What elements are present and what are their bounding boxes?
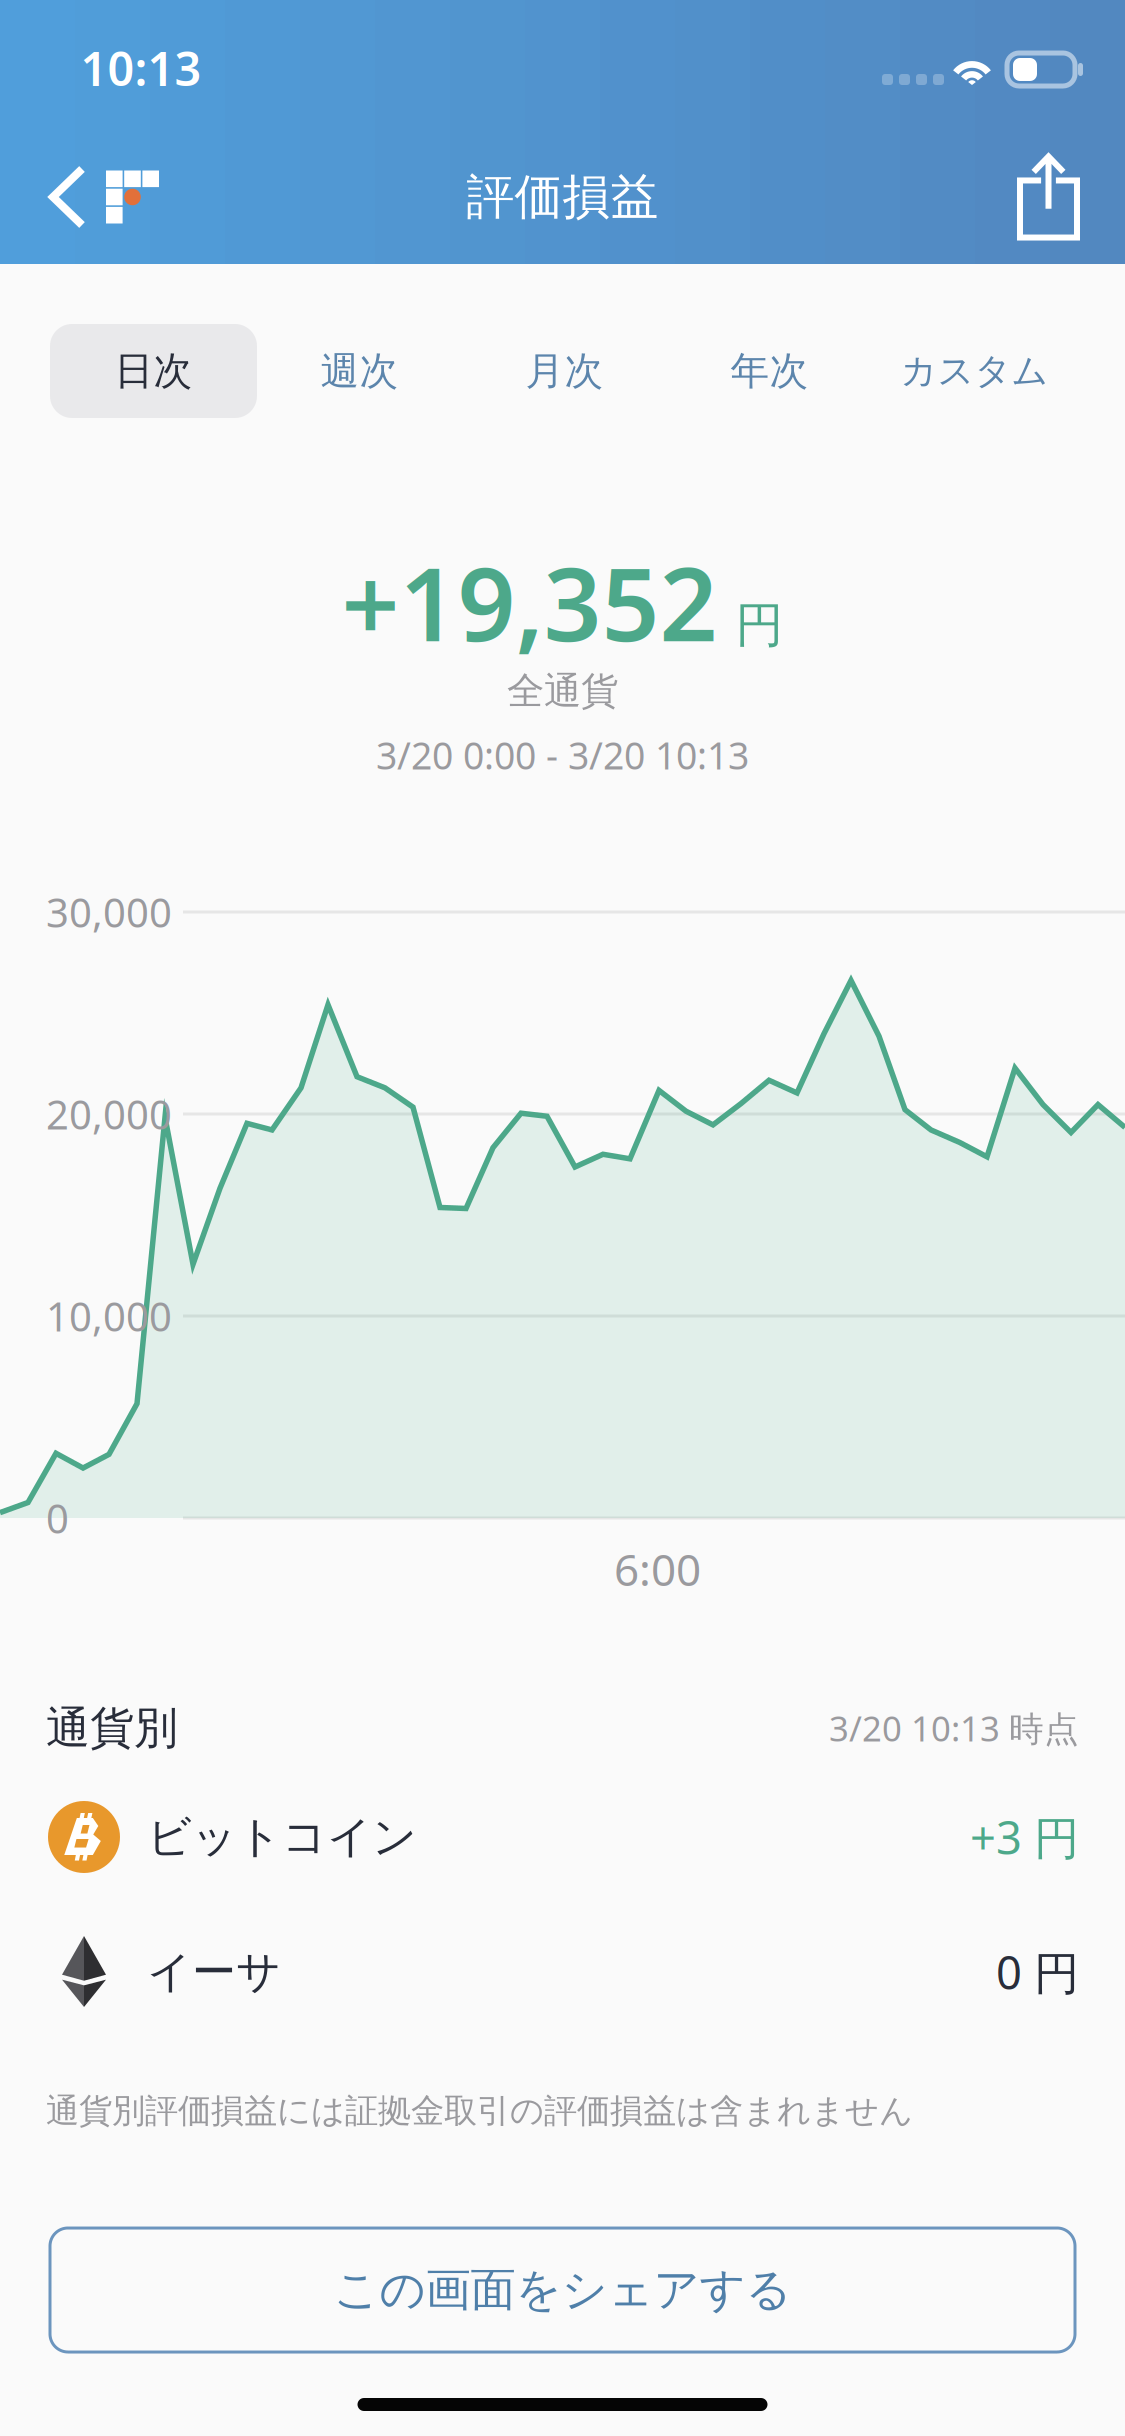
button[interactable]: カスタム — [872, 324, 1077, 418]
button[interactable]: 年次 — [667, 324, 872, 418]
button[interactable]: イーサ — [0, 1913, 1125, 2031]
staticText: この画面をシェアする — [333, 2262, 791, 2318]
staticText: ビットコイン — [147, 1810, 417, 1864]
staticText: 円 — [735, 596, 783, 655]
staticText: 3/20 0:00 - 3/20 10:13 — [376, 730, 749, 780]
staticText: 年次 — [730, 347, 808, 395]
staticText: イーサ — [147, 1945, 281, 1999]
button[interactable]: ビットコイン — [0, 1778, 1125, 1896]
staticText: 10:13 — [80, 37, 201, 99]
staticText: 20,000 — [46, 1087, 172, 1140]
staticText: +3 円 — [970, 1807, 1079, 1867]
staticText: 月次 — [525, 347, 603, 395]
button[interactable]: この画面をシェアする — [50, 2228, 1075, 2352]
button[interactable]: Share — [976, 130, 1125, 264]
staticText: 0 — [46, 1491, 69, 1544]
staticText: 30,000 — [46, 885, 172, 938]
staticText: カスタム — [900, 349, 1048, 393]
button[interactable]: 月次 — [462, 324, 667, 418]
staticText: 通貨別評価損益には証拠金取引の評価損益は含まれません — [46, 2090, 913, 2131]
staticText: 6:00 — [614, 1540, 701, 1598]
staticText: 日次 — [114, 347, 192, 395]
staticText: 0 円 — [996, 1942, 1079, 2002]
button[interactable]: Back — [0, 130, 199, 264]
staticText: +19,352 — [341, 535, 717, 669]
button[interactable]: 週次 — [257, 324, 462, 418]
staticText: 評価損益 — [466, 167, 658, 226]
staticText: 3/20 10:13 時点 — [829, 1705, 1079, 1751]
button[interactable]: 日次 — [50, 324, 257, 418]
staticText: 通貨別 — [46, 1701, 178, 1755]
staticText: 週次 — [320, 347, 398, 395]
staticText: 全通貨 — [507, 668, 618, 714]
staticText: 10,000 — [46, 1289, 172, 1342]
